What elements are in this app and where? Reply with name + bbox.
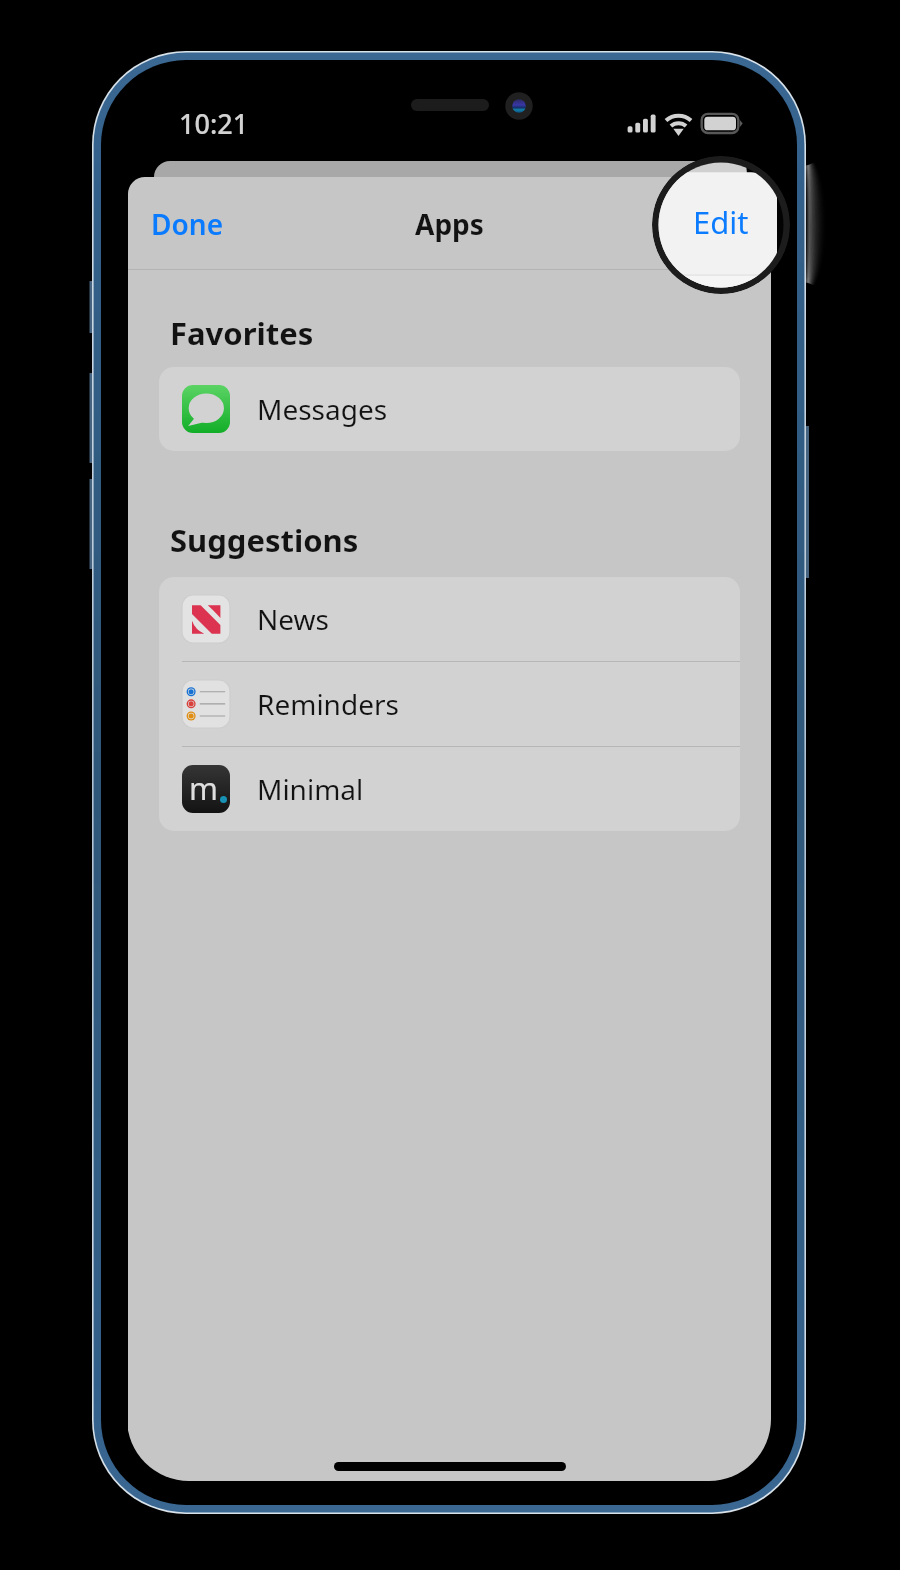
staticText: Reminders	[257, 685, 399, 723]
button[interactable]: Messages	[159, 367, 740, 451]
button[interactable]: Edit	[668, 189, 771, 259]
button[interactable]: Reminders	[159, 662, 740, 746]
button[interactable]: Done	[128, 189, 247, 259]
staticText: Favorites	[170, 312, 314, 354]
button[interactable]: m	[159, 747, 740, 831]
staticText: Edit	[694, 205, 745, 243]
staticText: 10:21	[179, 105, 249, 142]
staticText: Suggestions	[170, 519, 359, 561]
button[interactable]: Edit	[652, 156, 790, 294]
staticText: Done	[151, 205, 224, 243]
staticText: Messages	[257, 390, 388, 428]
staticText: Minimal	[257, 770, 364, 808]
button[interactable]: News	[159, 577, 740, 661]
staticText: Edit	[693, 201, 749, 243]
staticText: Apps	[415, 205, 484, 243]
staticText: News	[257, 600, 329, 638]
staticText: m	[189, 767, 218, 809]
